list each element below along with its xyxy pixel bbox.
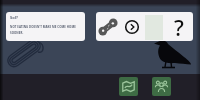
button[interactable]: Hint <box>164 12 193 41</box>
button[interactable]: Sol? <box>6 12 85 41</box>
button[interactable]: Empty slot <box>144 12 164 41</box>
button[interactable]: Chain link item <box>96 12 120 41</box>
staticText: Sol? <box>10 15 18 20</box>
staticText: ? <box>174 12 184 41</box>
staticText: NOT EATING DOESN'T MAKE ME COME HOME SOO… <box>10 25 76 35</box>
button[interactable]: Map <box>119 77 138 96</box>
button[interactable]: Next <box>120 12 144 41</box>
button[interactable]: Characters <box>152 77 171 96</box>
